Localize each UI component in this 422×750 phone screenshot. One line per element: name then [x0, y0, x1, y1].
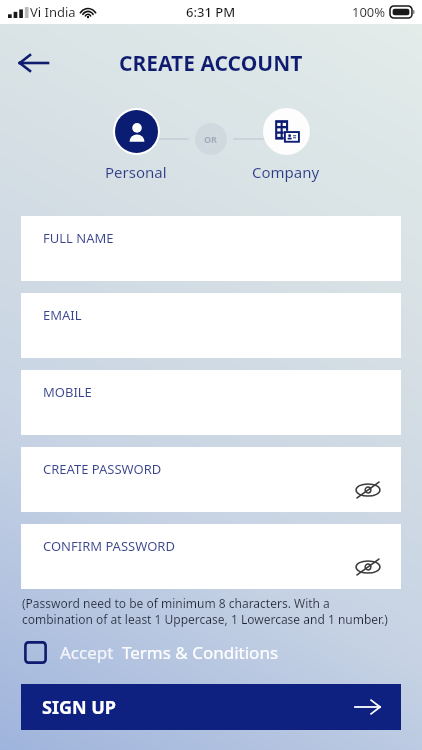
button[interactable]: Terms & Conditions	[122, 641, 279, 664]
staticText: Accept	[60, 641, 114, 664]
button[interactable]: MOBILE	[21, 370, 401, 435]
staticText: SIGN UP	[42, 695, 117, 720]
button[interactable]: Personal	[61, 108, 211, 182]
staticText: 6:31 PM	[186, 3, 236, 21]
button[interactable]: Show password	[351, 473, 385, 507]
button[interactable]: EMAIL	[21, 293, 401, 358]
button[interactable]: FULL NAME	[21, 216, 401, 281]
staticText: EMAIL	[43, 306, 82, 324]
button[interactable]: SIGN UP	[21, 684, 401, 730]
button[interactable]: Company	[211, 108, 361, 182]
staticText: 100%	[352, 3, 386, 21]
button[interactable]: Accept	[24, 641, 400, 664]
button[interactable]: CONFIRM PASSWORD	[21, 524, 401, 589]
button[interactable]: CREATE PASSWORD	[21, 447, 401, 512]
button[interactable]: Back	[10, 40, 56, 86]
staticText: OR	[204, 133, 218, 145]
staticText: Vi India	[30, 3, 76, 21]
staticText: FULL NAME	[43, 229, 114, 247]
other: Submit	[351, 690, 385, 724]
staticText: CONFIRM PASSWORD	[43, 537, 175, 555]
staticText: Personal	[105, 162, 167, 182]
staticText: CREATE PASSWORD	[43, 460, 162, 478]
staticText: MOBILE	[43, 383, 92, 401]
staticText: Company	[252, 162, 320, 182]
button[interactable]: Show password	[351, 550, 385, 584]
staticText: (Password need to be of minimum 8 charac…	[22, 595, 400, 627]
staticText: CREATE ACCOUNT	[119, 49, 303, 78]
